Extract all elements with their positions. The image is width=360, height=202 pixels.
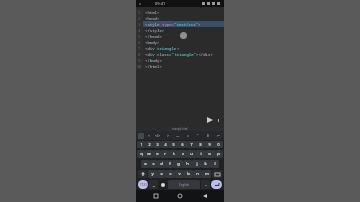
- staticText: <style: [145, 22, 162, 27]
- staticText: 2: [138, 16, 141, 21]
- staticText: 0: [217, 142, 220, 147]
- staticText: type=: [162, 22, 174, 27]
- button[interactable]: ↵: [213, 131, 223, 140]
- button[interactable]: English: [168, 180, 200, 189]
- button[interactable]: i: [196, 150, 205, 158]
- button[interactable]: l: [210, 160, 219, 168]
- button[interactable]: ?123: [138, 180, 148, 189]
- button[interactable]: 8: [136, 51, 224, 57]
- button[interactable]: 10: [136, 63, 224, 69]
- button[interactable]: 3: [153, 141, 161, 148]
- staticText: p: [217, 151, 220, 157]
- button[interactable]: v: [175, 170, 184, 178]
- staticText: English: [179, 183, 190, 187]
- button[interactable]: Emoji: [159, 180, 166, 189]
- button[interactable]: 5: [136, 33, 224, 39]
- staticText: 8: [199, 142, 202, 147]
- button[interactable]: <: [144, 131, 153, 140]
- staticText: 10: [137, 64, 142, 69]
- button[interactable]: Home: [175, 191, 185, 201]
- button[interactable]: p: [214, 150, 223, 158]
- button[interactable]: 7: [136, 45, 224, 51]
- staticText: i: [200, 151, 202, 157]
- button[interactable]: 4: [136, 27, 224, 33]
- staticText: w: [147, 151, 151, 157]
- button[interactable]: Back: [200, 191, 210, 201]
- button[interactable]: More options: [214, 116, 222, 124]
- button[interactable]: b: [184, 170, 193, 178]
- staticText: v: [178, 171, 181, 177]
- staticText: >: [198, 22, 201, 27]
- staticText: <div class=: [145, 52, 172, 57]
- staticText: q: [140, 151, 143, 157]
- button[interactable]: 2: [136, 15, 224, 21]
- button[interactable]: 1: [136, 9, 224, 15]
- button[interactable]: c: [166, 170, 175, 178]
- button[interactable]: n: [193, 170, 202, 178]
- button[interactable]: —: [173, 131, 183, 140]
- button[interactable]: s: [149, 160, 157, 168]
- button[interactable]: x: [157, 170, 166, 178]
- staticText: .: [205, 182, 207, 187]
- button[interactable]: h: [183, 160, 192, 168]
- button[interactable]: 4: [161, 141, 169, 148]
- staticText: 8: [138, 52, 141, 57]
- button[interactable]: 6: [136, 39, 224, 45]
- button[interactable]: k: [201, 160, 210, 168]
- staticText: triangle.html: [172, 127, 188, 131]
- button[interactable]: t: [169, 150, 178, 158]
- button[interactable]: 0: [214, 141, 223, 148]
- button[interactable]: >: [163, 131, 173, 140]
- button[interactable]: 8: [196, 141, 205, 148]
- staticText: b: [187, 171, 190, 177]
- button[interactable]: Run: [205, 115, 214, 124]
- button[interactable]: 9: [136, 57, 224, 63]
- button[interactable]: f: [165, 160, 174, 168]
- button[interactable]: w: [145, 150, 153, 158]
- staticText: 1: [138, 10, 141, 15]
- button[interactable]: =: [183, 131, 193, 140]
- staticText: 5: [172, 142, 175, 147]
- staticText: >: [167, 133, 169, 138]
- button[interactable]: $: [203, 131, 213, 140]
- button[interactable]: Backspace: [212, 170, 222, 178]
- button[interactable]: .: [201, 180, 210, 189]
- button[interactable]: Shift: [138, 170, 147, 178]
- button[interactable]: ": [193, 131, 203, 140]
- staticText: ,: [153, 182, 155, 187]
- button[interactable]: o: [205, 150, 214, 158]
- button[interactable]: </>: [153, 131, 163, 140]
- staticText: ↵: [217, 134, 220, 138]
- button[interactable]: 9: [205, 141, 214, 148]
- button[interactable]: j: [192, 160, 201, 168]
- button[interactable]: y: [148, 170, 157, 178]
- button[interactable]: Enter: [211, 180, 222, 189]
- button[interactable]: z: [178, 150, 187, 158]
- button[interactable]: q: [137, 150, 145, 158]
- button[interactable]: 7: [187, 141, 196, 148]
- button[interactable]: 2: [145, 141, 153, 148]
- button[interactable]: 5: [169, 141, 178, 148]
- staticText: j: [196, 161, 198, 167]
- staticText: f: [169, 161, 171, 167]
- staticText: e: [156, 151, 159, 157]
- staticText: t: [173, 151, 175, 157]
- staticText: n: [196, 171, 199, 177]
- button[interactable]: e: [153, 150, 161, 158]
- button[interactable]: m: [202, 170, 211, 178]
- button[interactable]: r: [161, 150, 169, 158]
- button[interactable]: Recents: [151, 191, 161, 201]
- staticText: z: [182, 151, 184, 157]
- button[interactable]: a: [141, 160, 149, 168]
- staticText: $: [207, 133, 209, 138]
- button[interactable]: ,: [149, 180, 158, 189]
- button[interactable]: u: [187, 150, 196, 158]
- button[interactable]: d: [157, 160, 165, 168]
- button[interactable]: 6: [178, 141, 187, 148]
- staticText: 2: [148, 142, 151, 147]
- button[interactable]: 3: [136, 21, 224, 27]
- staticText: <: [148, 133, 150, 138]
- button[interactable]: g: [174, 160, 183, 168]
- button[interactable]: 1: [137, 141, 145, 148]
